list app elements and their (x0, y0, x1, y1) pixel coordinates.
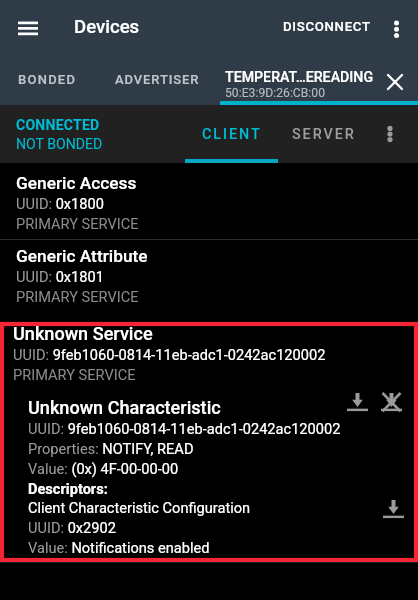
staticText: BONDED (18, 72, 77, 87)
staticText: TEMPERAT…EREADING (225, 69, 374, 86)
staticText: Client Characteristic Configuration (28, 499, 251, 516)
staticText: UUID: 0x1800 (16, 195, 104, 212)
staticText: Properties: NOTIFY, READ (28, 440, 194, 457)
button[interactable]: BONDED (0, 53, 94, 105)
button[interactable]: CLIENT (185, 105, 278, 163)
staticText: SERVER (292, 126, 356, 143)
staticText: PRIMARY SERVICE (16, 288, 139, 305)
staticText: UUID: 0x2902 (28, 519, 116, 536)
staticText: UUID: 0x1801 (16, 268, 104, 285)
button[interactable]: Read (340, 385, 374, 419)
staticText: UUID: 9feb1060-0814-11eb-adc1-0242ac1200… (28, 420, 341, 437)
staticText: PRIMARY SERVICE (16, 215, 139, 232)
staticText: Value: (0x) 4F-00-00-00 (28, 460, 179, 477)
button[interactable]: ADVERTISER (94, 53, 220, 105)
staticText: CONNECTED (16, 117, 100, 134)
staticText: Devices (74, 16, 140, 38)
staticText: Unknown Service (13, 323, 153, 344)
staticText: Unknown Characteristic (28, 397, 221, 418)
button[interactable]: Disable notifications (374, 385, 408, 419)
staticText: UUID: 9feb1060-0814-11eb-adc1-0242ac1200… (13, 346, 326, 363)
button[interactable]: Read descriptor (376, 492, 410, 526)
button[interactable]: DISCONNECT (271, 0, 383, 53)
staticText: NOT BONDED (16, 136, 103, 153)
button[interactable]: SERVER (278, 105, 370, 163)
button[interactable]: Close (374, 57, 418, 101)
button[interactable]: More options (370, 105, 410, 163)
staticText: CLIENT (202, 126, 262, 143)
button[interactable]: Unknown Service (0, 322, 418, 384)
staticText: Value: Notifications enabled (28, 539, 210, 556)
staticText: ADVERTISER (115, 72, 200, 87)
button[interactable]: Menu (0, 0, 56, 53)
staticText: DISCONNECT (283, 19, 371, 34)
button[interactable]: TEMPERAT…EREADING (220, 53, 418, 105)
button[interactable]: Unknown Characteristic (0, 384, 418, 562)
staticText: Generic Attribute (16, 246, 148, 266)
button[interactable]: More options (383, 0, 410, 53)
staticText: Descriptors: (28, 480, 108, 497)
staticText: PRIMARY SERVICE (13, 366, 136, 383)
button[interactable]: Generic Access (0, 163, 418, 239)
staticText: 50:E3:9D:26:CB:00 (225, 86, 326, 100)
button[interactable]: Generic Attribute (0, 240, 418, 322)
staticText: Generic Access (16, 173, 137, 193)
